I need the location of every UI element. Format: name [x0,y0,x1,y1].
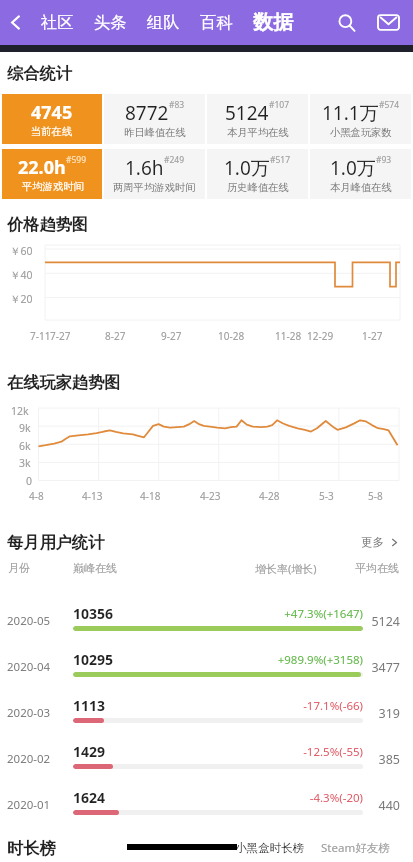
staticText: 百科 [200,12,233,33]
staticText: 昨日峰值在线 [124,126,186,139]
staticText: 1429 [73,742,106,761]
button[interactable]: 2020-03 [0,687,413,733]
staticText: #574 [379,99,400,111]
staticText: 3477 [330,659,400,676]
staticText: #83 [169,99,185,111]
staticText: 5-3 [319,489,334,503]
staticText: 4-18 [140,489,161,503]
staticText: 9k [19,421,31,435]
button[interactable]: 8772 [104,94,205,144]
staticText: 1113 [73,696,106,715]
button[interactable]: Back [0,7,31,38]
staticText: -4.3%(-20) [210,790,363,806]
staticText: 10-28 [218,329,245,343]
staticText: +989.9%(+3158) [210,652,363,668]
staticText: 7-27 [50,329,71,343]
staticText: -12.5%(-55) [210,744,363,760]
staticText: 平均游戏时间 [22,180,84,193]
button[interactable]: 2020-05 [0,595,413,641]
button[interactable]: 数据 [243,0,303,45]
button[interactable]: 4745 [2,94,102,144]
button[interactable]: Steam好友榜 [320,834,391,862]
staticText: 319 [330,705,400,722]
staticText: #517 [270,154,291,166]
staticText: 4-13 [82,489,103,503]
staticText: 7-11 [30,329,51,343]
staticText: ￥40 [10,268,33,282]
button[interactable]: 组队 [137,0,190,45]
button[interactable]: 社区 [31,0,84,45]
staticText: 11.1万 [322,100,379,126]
staticText: 10295 [73,650,114,669]
staticText: 综合统计 [7,63,72,83]
staticText: #249 [164,154,185,166]
button[interactable]: 22.0h [2,149,102,199]
staticText: 价格趋势图 [7,214,88,234]
staticText: 5124 [330,613,400,630]
button[interactable]: 头条 [84,0,137,45]
button[interactable]: Messages [370,0,407,45]
button[interactable]: 1.6h [104,149,205,199]
staticText: 组队 [147,12,180,33]
staticText: 10356 [73,604,114,623]
button[interactable]: 2020-02 [0,733,413,779]
staticText: 8-27 [105,329,126,343]
staticText: 5124 [225,100,269,126]
staticText: 11-28 [275,329,302,343]
staticText: 历史峰值在线 [227,181,289,194]
staticText: 本月峰值在线 [330,181,392,194]
staticText: 两周平均游戏时间 [113,181,196,194]
staticText: 每月用户统计 [7,532,105,552]
staticText: 12-29 [307,329,334,343]
staticText: 更多 [361,535,384,549]
staticText: 440 [330,797,400,814]
button[interactable]: 1.0万 [310,149,411,199]
staticText: 本月平均在线 [227,126,289,139]
button[interactable]: 5124 [207,94,308,144]
staticText: 1.6h [125,155,164,181]
staticText: 4-23 [200,489,221,503]
staticText: 4-8 [29,489,44,503]
staticText: 385 [330,751,400,768]
button[interactable]: 2020-01 [0,779,413,825]
staticText: #599 [66,154,87,166]
staticText: 3k [19,456,31,470]
button[interactable]: 百科 [190,0,243,45]
staticText: 9-27 [161,329,182,343]
staticText: ￥60 [10,244,33,258]
staticText: 0 [26,474,33,488]
staticText: 增长率(增长) [255,561,317,576]
staticText: 8772 [125,100,169,126]
staticText: 5-8 [368,489,383,503]
staticText: ￥20 [10,292,33,306]
staticText: 2020-02 [7,751,51,767]
button[interactable]: 小黑盒时长榜 [234,835,305,861]
staticText: +47.3%(+1647) [210,606,363,622]
staticText: 4-28 [259,489,280,503]
button[interactable]: 1.0万 [207,149,308,199]
staticText: 月份 [8,561,30,575]
staticText: 数据 [253,10,293,35]
button[interactable]: 2020-04 [0,641,413,687]
staticText: 在线玩家趋势图 [7,372,121,392]
staticText: 头条 [94,12,127,33]
staticText: -17.1%(-66) [210,698,363,714]
button[interactable]: Search [324,0,370,45]
staticText: 2020-03 [7,705,51,721]
staticText: 1.0万 [330,155,376,181]
staticText: 1-27 [362,329,383,343]
staticText: 2020-04 [7,659,51,675]
button[interactable]: 更多 [351,530,413,554]
staticText: 12k [11,404,29,418]
staticText: 小黑盒时长榜 [235,841,304,855]
staticText: #93 [376,154,392,166]
staticText: 2020-05 [7,613,51,629]
staticText: 22.0h [18,155,66,180]
staticText: #107 [269,99,290,111]
staticText: 1.0万 [224,155,270,181]
staticText: 当前在线 [31,125,73,138]
button[interactable]: 11.1万 [310,94,411,144]
staticText: 4745 [31,100,73,125]
staticText: 1624 [73,788,106,807]
staticText: 巅峰在线 [73,561,117,575]
